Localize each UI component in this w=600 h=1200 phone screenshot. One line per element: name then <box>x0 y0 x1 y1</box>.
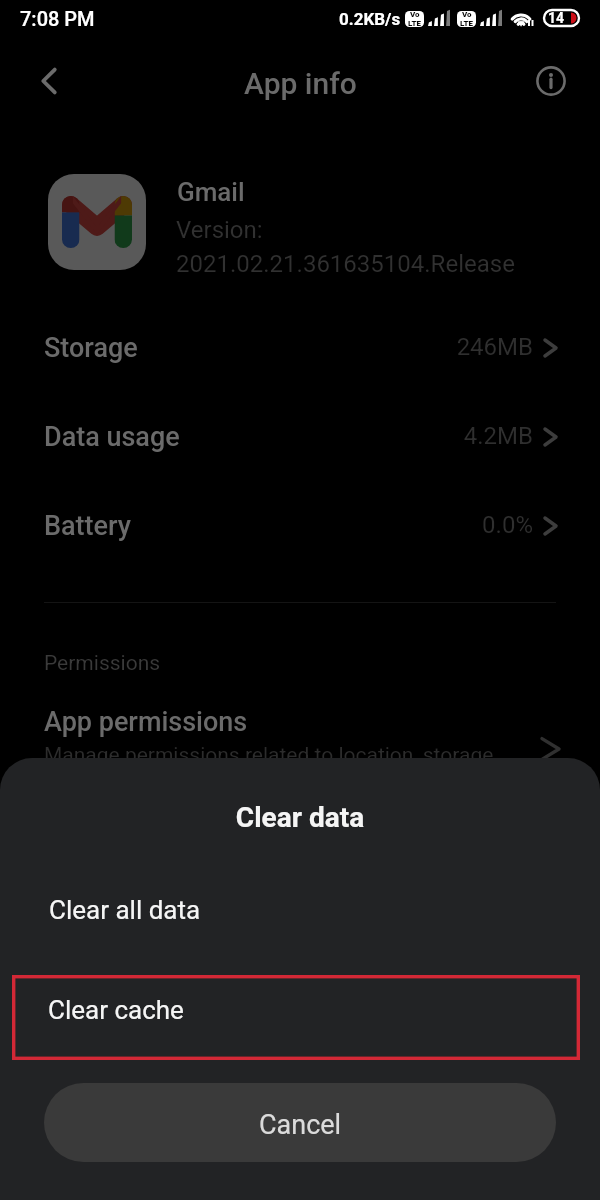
staticText: 0.0% <box>333 511 533 539</box>
button[interactable]: Back <box>26 58 72 104</box>
staticText: App permissions <box>44 706 248 738</box>
button[interactable]: Clear cache <box>12 975 580 1060</box>
staticText: 4.2MB <box>333 422 533 450</box>
staticText: Version: 2021.02.21.361635104.Release <box>176 216 515 278</box>
button[interactable]: Battery <box>0 490 600 579</box>
staticText: Clear all data <box>49 895 201 925</box>
staticText: 246MB <box>333 333 533 361</box>
button[interactable]: Data usage <box>0 401 600 490</box>
staticText: 14 <box>548 10 565 26</box>
staticText: Vo <box>462 10 472 19</box>
staticText: Data usage <box>44 421 180 453</box>
staticText: 0.2KB/s <box>339 9 401 29</box>
staticText: App info <box>244 66 357 101</box>
staticText: Battery <box>44 510 132 542</box>
staticText: Vo <box>410 10 420 19</box>
staticText: Permissions <box>44 651 161 676</box>
staticText: Clear data <box>0 801 600 834</box>
button[interactable]: App details <box>528 58 574 104</box>
button[interactable]: App permissions <box>0 700 600 790</box>
staticText: Manage permissions related to location, … <box>44 743 494 768</box>
button[interactable]: Cancel <box>44 1083 556 1162</box>
staticText: LTE <box>408 19 422 26</box>
staticText: Storage <box>44 332 138 364</box>
staticText: LTE <box>460 19 474 26</box>
button[interactable]: Storage <box>0 312 600 401</box>
button[interactable]: Clear all data <box>0 866 600 944</box>
staticText: Cancel <box>259 1109 342 1141</box>
staticText: Clear cache <box>48 995 184 1025</box>
staticText: 7:08 PM <box>20 7 95 30</box>
staticText: Gmail <box>177 177 245 207</box>
